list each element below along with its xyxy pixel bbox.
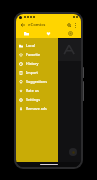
- staticText: Import: [26, 70, 38, 75]
- button[interactable]: Downloads: [59, 29, 81, 38]
- button[interactable]: Rate us: [16, 86, 58, 95]
- button[interactable]: Suggestions: [16, 77, 58, 86]
- staticText: Settings: [26, 97, 40, 102]
- button[interactable]: Search: [65, 21, 72, 28]
- button[interactable]: Open navigation drawer: [19, 21, 26, 28]
- button[interactable]: More options: [72, 22, 78, 28]
- button[interactable]: Favorites: [37, 29, 59, 38]
- button[interactable]: Add: [69, 148, 77, 156]
- staticText: Local: [26, 43, 35, 48]
- staticText: Rate us: [26, 88, 39, 93]
- button[interactable]: History: [16, 59, 58, 68]
- button[interactable]: Local: [16, 41, 58, 50]
- staticText: Favorite: [26, 52, 40, 57]
- staticText: Remove ads: [26, 106, 47, 111]
- button[interactable]: Import: [16, 68, 58, 77]
- staticText: History: [26, 61, 39, 66]
- button[interactable]: Settings: [16, 95, 58, 104]
- button[interactable]: Remove ads: [16, 104, 58, 113]
- button[interactable]: Favorite: [16, 50, 58, 59]
- staticText: Suggestions: [26, 79, 48, 84]
- staticText: eComics: [28, 22, 46, 28]
- button[interactable]: Library: [16, 29, 37, 38]
